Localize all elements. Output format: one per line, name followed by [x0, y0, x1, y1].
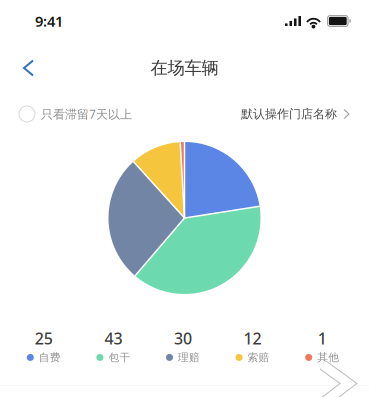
button[interactable]: 30 — [148, 328, 218, 364]
staticText: 只看滞留7天以上 — [41, 106, 132, 122]
staticText: 25 — [35, 328, 53, 349]
staticText: 索赔 — [248, 351, 270, 364]
button[interactable]: Back — [0, 51, 47, 84]
staticText: 43 — [104, 328, 122, 349]
staticText: 包干 — [108, 351, 130, 364]
staticText: 12 — [244, 328, 262, 349]
staticText: 默认操作门店名称 — [241, 107, 337, 121]
staticText: 在场车辆 — [150, 57, 218, 79]
staticText: 9:41 — [35, 11, 63, 31]
button[interactable]: 43 — [79, 328, 148, 364]
staticText: 其他 — [317, 351, 339, 364]
staticText: 自费 — [39, 351, 61, 364]
staticText: 1 — [318, 328, 327, 349]
button[interactable]: 25 — [9, 328, 79, 364]
staticText: 理赔 — [178, 351, 200, 364]
staticText: 30 — [174, 328, 192, 349]
button[interactable]: 只看滞留7天以上 — [19, 106, 132, 122]
button[interactable]: 默认操作门店名称 — [241, 107, 349, 121]
button[interactable]: 1 — [287, 328, 357, 364]
button[interactable]: 12 — [218, 328, 287, 364]
